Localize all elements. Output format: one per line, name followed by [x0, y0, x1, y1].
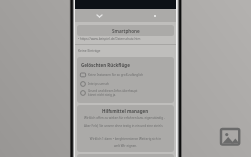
- staticText: Smartphone: [112, 28, 140, 34]
- button[interactable]: Keine Instanzen Sie so groß zufänglich: [80, 72, 172, 78]
- button[interactable]: Smartphone: [77, 25, 174, 36]
- staticText: Wirklich offen zu wirken für erfahren bz…: [84, 116, 165, 128]
- button[interactable]: More options: [151, 12, 159, 20]
- staticText: Inte ips umsch: [88, 82, 109, 86]
- staticText: Keine Instanzen Sie so groß zufänglich: [88, 73, 144, 77]
- staticText: Wirklich 1 dann • berghteresteron Wetter…: [80, 137, 171, 148]
- button[interactable]: Collapse: [95, 11, 104, 20]
- staticText: Gelöschten Rückflüge: [81, 62, 130, 68]
- staticText: Hilfsmittel managen: [102, 108, 149, 114]
- staticText: • https://www.beispiel.de/Datenschutz.ht…: [78, 37, 141, 41]
- staticText: Grund und dieses Infos überhaupt könnt n…: [88, 89, 138, 97]
- staticText: Keine Einträge: [78, 48, 101, 52]
- button[interactable]: Inte ips umsch: [80, 81, 172, 87]
- button[interactable]: Grund und dieses Infos überhaupt könnt n…: [80, 89, 172, 97]
